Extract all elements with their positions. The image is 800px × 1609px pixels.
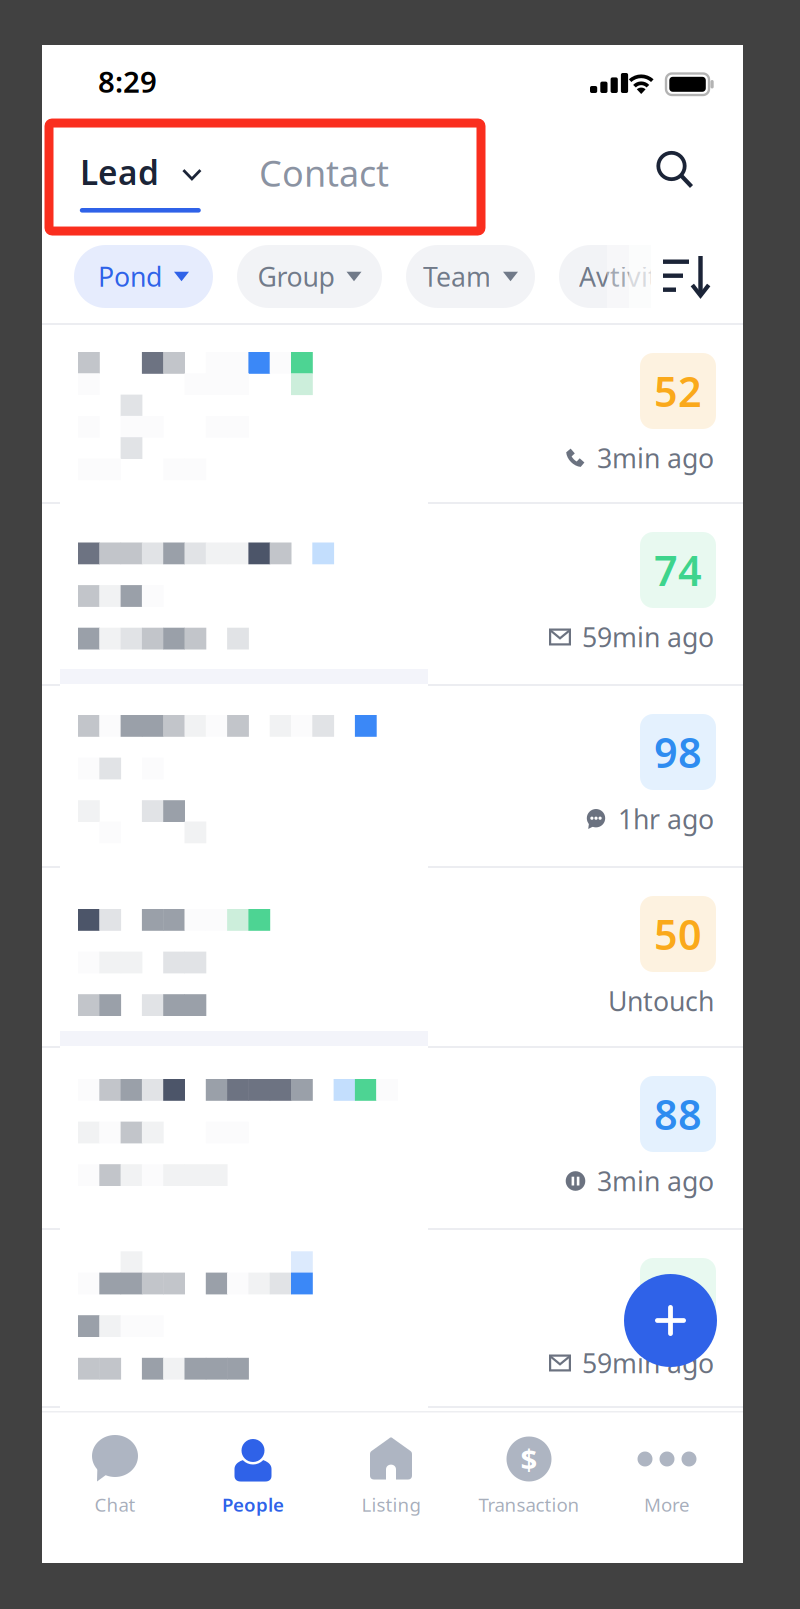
button[interactable]: 52: [42, 325, 743, 504]
staticText: Untouch: [608, 983, 714, 1019]
staticText: Group: [257, 259, 334, 294]
staticText: 59min ago: [582, 619, 714, 655]
staticText: Transaction: [478, 1492, 579, 1517]
staticText: 3min ago: [597, 440, 714, 476]
staticText: Contact: [259, 149, 389, 197]
button[interactable]: 88: [42, 1048, 743, 1230]
staticText: More: [644, 1492, 690, 1517]
staticText: Avtivity: [579, 259, 672, 294]
staticText: Team: [423, 259, 491, 294]
button[interactable]: Listing: [322, 1411, 460, 1521]
staticText: People: [222, 1492, 284, 1517]
button[interactable]: Team: [406, 245, 535, 308]
staticText: Lead: [80, 150, 159, 194]
staticText: 98: [654, 725, 702, 779]
button[interactable]: Group: [237, 245, 382, 308]
staticText: 3min ago: [597, 1163, 714, 1199]
staticText: Listing: [361, 1492, 420, 1517]
button[interactable]: 98: [42, 686, 743, 868]
staticText: Pond: [98, 259, 162, 294]
staticText: 1hr ago: [618, 801, 714, 837]
button[interactable]: More: [598, 1411, 736, 1521]
staticText: $: [520, 1439, 537, 1478]
staticText: 88: [654, 1087, 702, 1141]
button[interactable]: People: [184, 1411, 322, 1521]
button[interactable]: Lead: [80, 123, 244, 211]
button[interactable]: Chat: [46, 1411, 184, 1521]
staticText: 52: [654, 364, 702, 418]
staticText: Chat: [94, 1492, 135, 1517]
button[interactable]: Search: [640, 135, 712, 207]
button[interactable]: Pond: [74, 245, 213, 308]
button[interactable]: [42, 1230, 743, 1408]
button[interactable]: 74: [42, 504, 743, 686]
button[interactable]: 50: [42, 868, 743, 1048]
button[interactable]: Contact: [259, 123, 441, 211]
staticText: 74: [654, 543, 702, 597]
button[interactable]: Sort: [654, 242, 724, 312]
staticText: 8:29: [98, 62, 157, 101]
button[interactable]: Add lead: [624, 1274, 717, 1367]
staticText: 59min ago: [582, 1345, 714, 1381]
staticText: 50: [654, 907, 702, 961]
button[interactable]: Avtivity: [559, 245, 719, 308]
button[interactable]: $: [460, 1411, 598, 1521]
